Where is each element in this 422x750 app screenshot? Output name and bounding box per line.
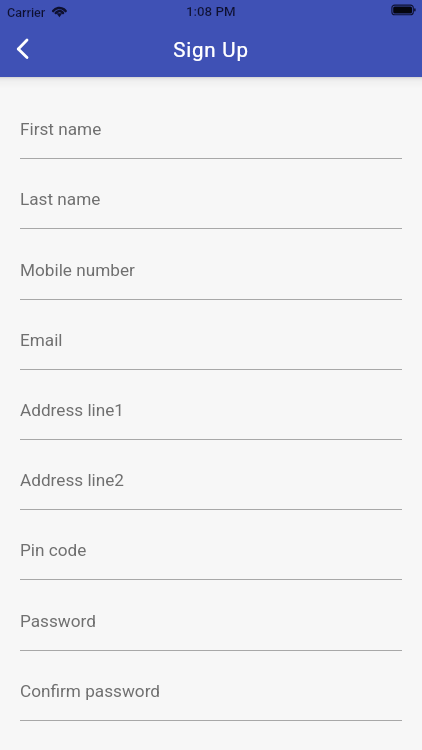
staticText: Mobile number <box>20 260 135 280</box>
staticText: Pin code <box>20 540 87 560</box>
staticText: 1:08 PM <box>186 4 236 20</box>
button[interactable]: Confirm password <box>0 672 422 730</box>
staticText: Address line1 <box>20 400 125 420</box>
button[interactable]: Password <box>0 602 422 660</box>
staticText: First name <box>20 119 102 139</box>
other: Wi-Fi signal <box>51 3 69 21</box>
staticText: Confirm password <box>20 681 160 701</box>
button[interactable]: Back <box>0 26 44 70</box>
button[interactable]: Pin code <box>0 531 422 589</box>
staticText: Password <box>20 611 96 631</box>
button[interactable]: Email <box>0 321 422 379</box>
staticText: Sign Up <box>173 38 249 62</box>
button[interactable]: Last name <box>0 180 422 238</box>
staticText: Address line2 <box>20 470 125 490</box>
other: Battery full <box>390 4 416 16</box>
button[interactable]: Address line2 <box>0 461 422 519</box>
button[interactable]: Mobile number <box>0 251 422 309</box>
button[interactable]: First name <box>0 110 422 168</box>
staticText: Carrier <box>7 5 46 20</box>
button[interactable]: Address line1 <box>0 391 422 449</box>
staticText: Last name <box>20 189 101 209</box>
staticText: Email <box>20 330 63 350</box>
